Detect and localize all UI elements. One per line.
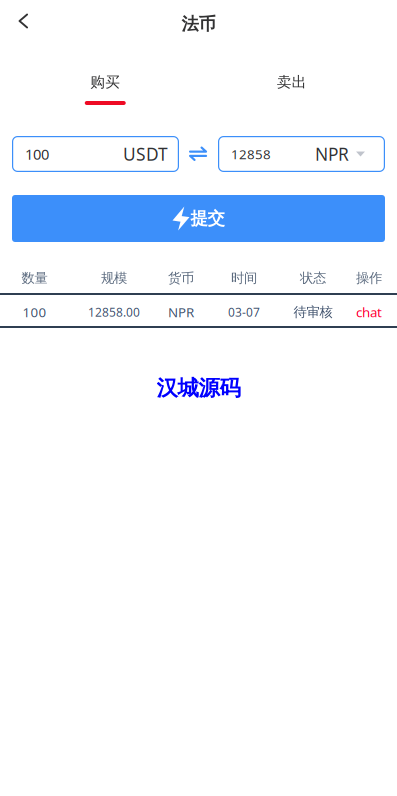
- staticText: 100: [22, 303, 46, 321]
- button[interactable]: 卖出: [198, 73, 385, 105]
- staticText: 提交: [190, 208, 224, 229]
- staticText: chat: [356, 303, 382, 321]
- staticText: 汉城源码: [156, 375, 240, 401]
- staticText: 12858: [231, 145, 271, 163]
- staticText: 100: [25, 144, 49, 164]
- staticText: 购买: [90, 73, 120, 91]
- staticText: 法币: [181, 13, 215, 35]
- staticText: 规模: [101, 270, 127, 286]
- staticText: 12858.00: [88, 304, 140, 320]
- staticText: 时间: [231, 270, 257, 286]
- button[interactable]: 100: [12, 136, 179, 172]
- staticText: NPR: [168, 303, 194, 321]
- button[interactable]: 12858: [218, 136, 385, 172]
- staticText: 操作: [356, 270, 382, 286]
- staticText: 03-07: [228, 304, 260, 320]
- button[interactable]: Back: [0, 0, 47, 44]
- button[interactable]: 提交: [12, 195, 385, 242]
- staticText: 数量: [21, 270, 47, 286]
- staticText: 待审核: [293, 304, 332, 320]
- staticText: 卖出: [277, 73, 307, 91]
- button[interactable]: 购买: [12, 73, 198, 105]
- staticText: USDT: [123, 142, 168, 165]
- staticText: NPR: [315, 142, 349, 165]
- staticText: 状态: [300, 270, 326, 286]
- staticText: 货币: [168, 270, 194, 286]
